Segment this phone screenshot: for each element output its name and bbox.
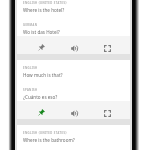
button[interactable]: Play translation aloud xyxy=(68,42,80,54)
button[interactable]: View full screen xyxy=(101,42,113,54)
staticText: Where is the hotel? xyxy=(23,7,65,13)
staticText: How much is that? xyxy=(23,72,63,78)
staticText: ENGLISH (UNITED STATES) xyxy=(23,1,67,5)
staticText: ENGLISH xyxy=(23,66,38,70)
button[interactable]: View full screen xyxy=(101,107,113,119)
button[interactable]: ENGLISH xyxy=(17,60,130,101)
staticText: SPANISH xyxy=(23,88,38,92)
button[interactable]: Play translation aloud xyxy=(68,107,80,119)
staticText: GERMAN xyxy=(23,23,38,27)
button[interactable]: Pin translation xyxy=(35,42,47,54)
staticText: Wo ist das Hotel? xyxy=(23,29,60,35)
button[interactable]: ENGLISH (UNITED STATES) xyxy=(17,0,130,36)
button[interactable]: ENGLISH (UNITED STATES) xyxy=(17,125,130,150)
staticText: ¿Cuánto es eso? xyxy=(23,94,58,100)
staticText: ENGLISH (UNITED STATES) xyxy=(23,131,67,135)
button[interactable]: Pin translation xyxy=(35,107,47,119)
staticText: Where is the bathroom? xyxy=(23,137,75,143)
